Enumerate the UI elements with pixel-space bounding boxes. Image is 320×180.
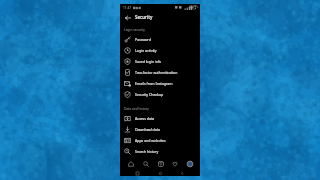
button[interactable]: Saved login info [120, 56, 200, 67]
staticText: Data and history [124, 107, 149, 111]
button[interactable]: Search history [120, 146, 200, 157]
button[interactable]: Back [178, 170, 187, 176]
button[interactable]: Emails from Instagram [120, 78, 200, 89]
button[interactable]: Download data [120, 124, 200, 135]
staticText: 11:47 [123, 6, 132, 10]
button[interactable]: Back [123, 13, 132, 22]
staticText: Search history [135, 149, 159, 154]
button[interactable]: Recents [133, 170, 142, 176]
button[interactable]: Home [156, 170, 165, 176]
staticText: Saved login info [135, 59, 162, 64]
staticText: Login security [124, 28, 145, 32]
button[interactable]: Profile [183, 157, 196, 170]
staticText: Two-factor authentication [135, 70, 178, 75]
button[interactable]: Apps and websites [120, 135, 200, 146]
staticText: Login activity [135, 48, 157, 53]
button[interactable]: Search [139, 157, 152, 170]
button[interactable]: Password [120, 34, 200, 45]
button[interactable]: Two-factor authentication [120, 67, 200, 78]
button[interactable]: Security Checkup [120, 89, 200, 100]
button[interactable]: Home [124, 157, 137, 170]
staticText: Security [135, 14, 153, 20]
button[interactable]: Reels [154, 157, 167, 170]
staticText: Emails from Instagram [135, 81, 173, 86]
staticText: Download data [135, 127, 160, 132]
button[interactable]: Activity [168, 157, 181, 170]
button[interactable]: Access data [120, 113, 200, 124]
staticText: Access data [135, 116, 155, 121]
staticText: Security Checkup [135, 92, 164, 97]
staticText: Apps and websites [135, 138, 166, 143]
button[interactable]: Login activity [120, 45, 200, 56]
staticText: Password [135, 37, 151, 42]
